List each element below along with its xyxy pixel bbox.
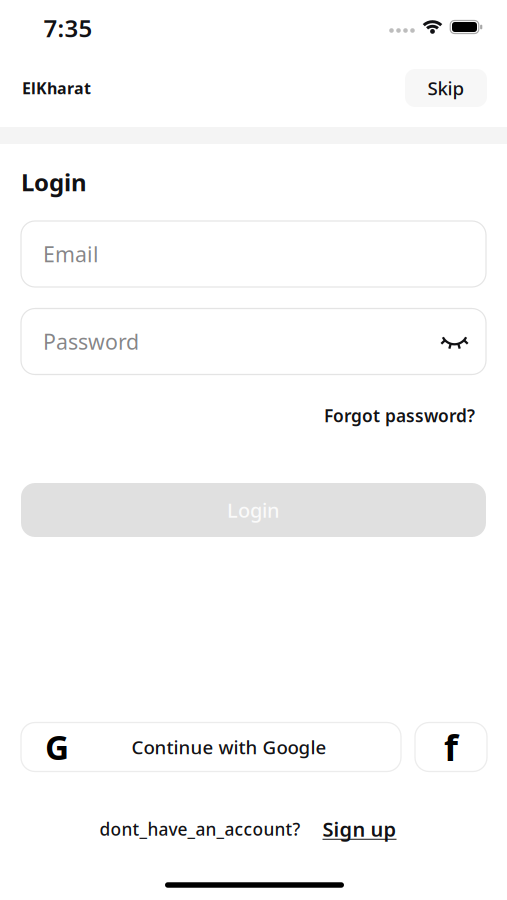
button[interactable]: Forgot password? bbox=[324, 404, 475, 427]
staticText: G bbox=[45, 725, 69, 769]
staticText: Continue with Google bbox=[131, 735, 326, 759]
staticText: Forgot password? bbox=[324, 404, 475, 427]
button[interactable]: Sign up bbox=[322, 816, 396, 842]
staticText: Login bbox=[21, 166, 87, 198]
staticText: Password bbox=[43, 327, 139, 356]
staticText: f bbox=[444, 723, 458, 771]
button[interactable]: G bbox=[21, 722, 401, 771]
button[interactable]: Password bbox=[21, 308, 486, 374]
button[interactable]: Skip bbox=[405, 69, 487, 107]
staticText: Sign up bbox=[322, 816, 396, 842]
button[interactable]: Continue with Facebook bbox=[415, 722, 487, 771]
button[interactable]: Email bbox=[21, 221, 486, 287]
staticText: ElKharat bbox=[22, 77, 91, 99]
staticText: Skip bbox=[427, 76, 464, 100]
staticText: dont_have_an_account? bbox=[99, 817, 300, 840]
staticText: 7:35 bbox=[43, 12, 92, 44]
button[interactable]: Show password bbox=[435, 326, 473, 356]
staticText: Login bbox=[227, 497, 280, 523]
button[interactable]: Login bbox=[21, 483, 486, 537]
staticText: Email bbox=[43, 240, 99, 268]
